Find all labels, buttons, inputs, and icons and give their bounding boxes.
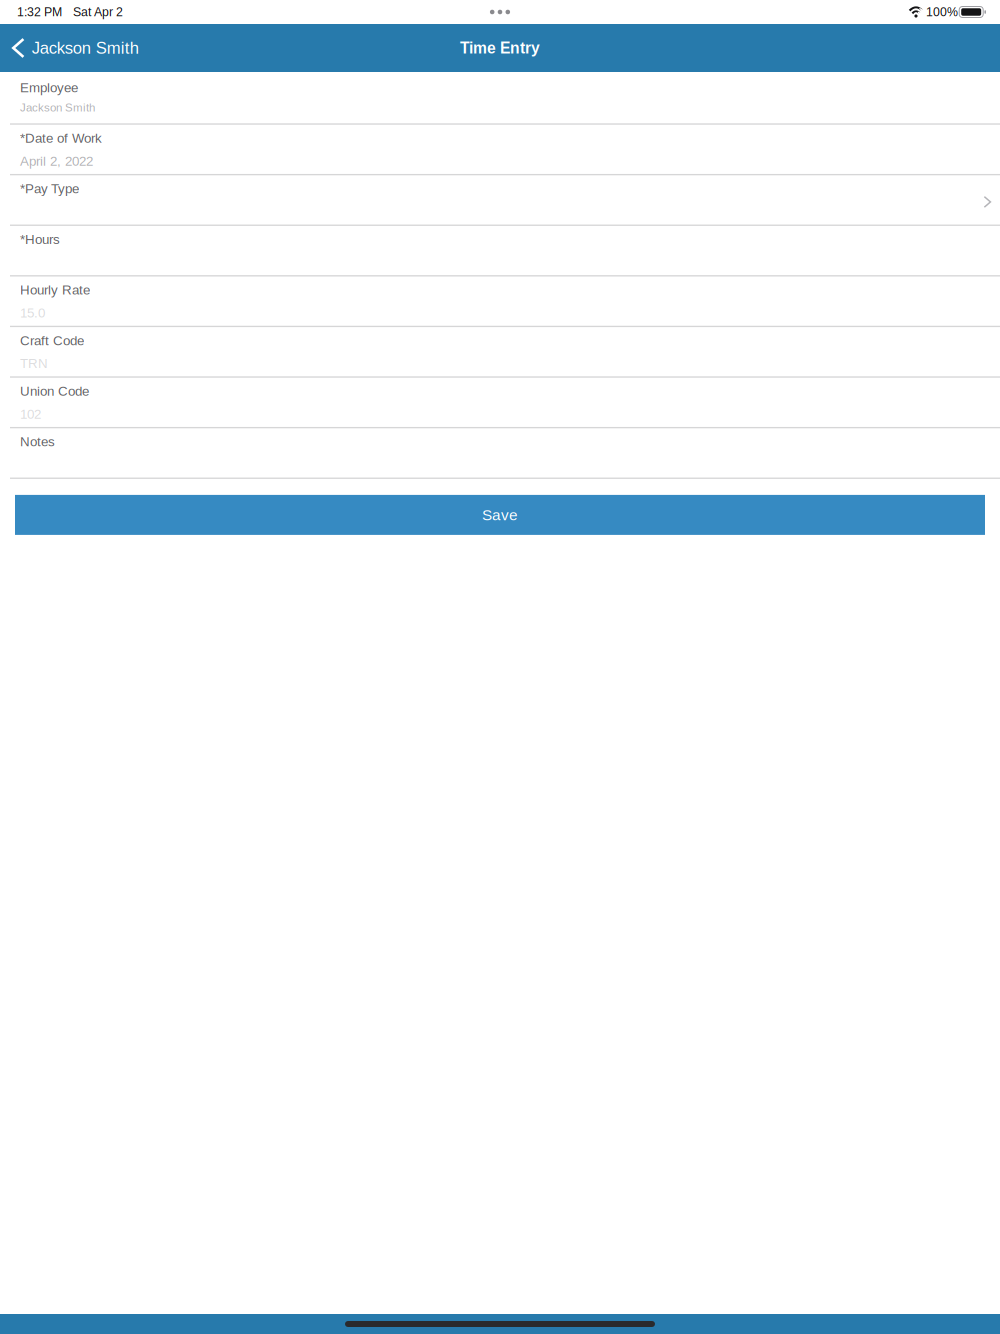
staticText: 100% (926, 5, 958, 19)
staticText: Jackson Smith (20, 101, 95, 114)
staticText: *Pay Type (20, 181, 79, 196)
staticText: *Date of Work (20, 131, 102, 146)
button[interactable]: Save (0, 495, 1000, 535)
staticText: 1:32 PM (17, 5, 62, 19)
button[interactable]: *Pay Type (0, 175, 1000, 226)
staticText: Jackson Smith (32, 39, 139, 57)
staticText: Hourly Rate (20, 282, 90, 297)
button[interactable]: Employee (0, 74, 1000, 125)
button[interactable]: Union Code (0, 378, 1000, 428)
staticText: TRN (20, 356, 48, 371)
staticText: 15.0 (20, 305, 45, 320)
button[interactable]: Hourly Rate (0, 276, 1000, 327)
button[interactable]: *Date of Work (0, 125, 1000, 175)
staticText: 102 (20, 407, 41, 421)
button[interactable]: Notes (0, 428, 1000, 479)
button[interactable]: Craft Code (0, 327, 1000, 378)
staticText: *Hours (20, 232, 60, 247)
staticText: Sat Apr 2 (73, 5, 123, 19)
button[interactable]: Jackson Smith (0, 24, 151, 72)
staticText: April 2, 2022 (20, 154, 93, 168)
staticText: Craft Code (20, 333, 84, 348)
staticText: Employee (20, 80, 78, 95)
button[interactable]: *Hours (0, 226, 1000, 276)
staticText: Time Entry (460, 39, 540, 57)
staticText: Union Code (20, 384, 89, 399)
staticText: Notes (20, 434, 55, 449)
staticText: Save (482, 506, 518, 523)
